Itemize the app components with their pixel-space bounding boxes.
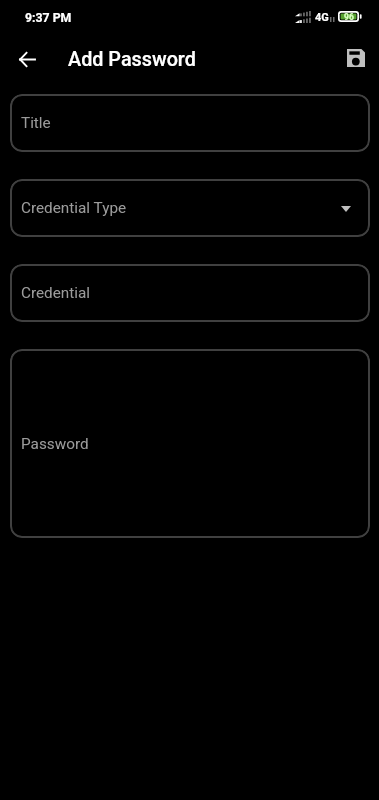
button[interactable]: Password: [10, 349, 370, 538]
staticText: Credential Type: [21, 199, 127, 217]
staticText: 4G: [315, 11, 329, 24]
button[interactable]: Credential: [10, 264, 370, 322]
button[interactable]: Credential Type: [10, 179, 370, 237]
staticText: 96: [344, 12, 354, 22]
button[interactable]: Back: [6, 39, 48, 81]
staticText: Password: [21, 435, 89, 453]
staticText: 9:37 PM: [25, 11, 72, 25]
button[interactable]: Save: [335, 37, 377, 79]
staticText: Add Password: [68, 48, 196, 71]
staticText: Credential: [21, 284, 91, 302]
staticText: Title: [21, 114, 51, 132]
button[interactable]: Title: [10, 94, 370, 152]
